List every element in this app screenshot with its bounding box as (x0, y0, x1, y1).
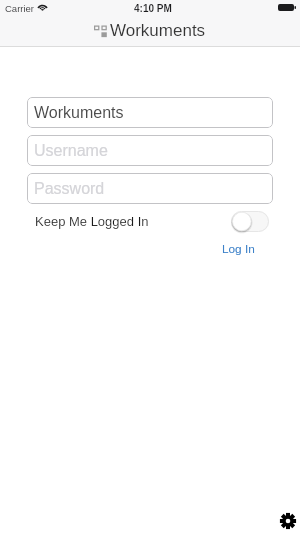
other: Wi-Fi signal (38, 4, 47, 11)
button[interactable]: Keep Me Logged In (35, 212, 149, 231)
staticText: Workuments (34, 104, 124, 122)
staticText: Log In (222, 242, 255, 255)
staticText: Keep Me Logged In (35, 214, 149, 229)
button[interactable]: Password (27, 173, 273, 204)
staticText: Password (34, 180, 105, 198)
staticText: Carrier (5, 3, 35, 14)
button[interactable]: Log In (220, 240, 257, 257)
button[interactable]: Username (27, 135, 273, 166)
button[interactable]: Keep Me Logged In, off (231, 211, 269, 232)
staticText: 4:10 PM (134, 3, 172, 14)
staticText: Username (34, 142, 108, 160)
button[interactable]: Settings (277, 510, 299, 532)
staticText: Workuments (110, 21, 206, 40)
other: Battery full (278, 4, 296, 11)
button[interactable]: Workuments (27, 97, 273, 128)
